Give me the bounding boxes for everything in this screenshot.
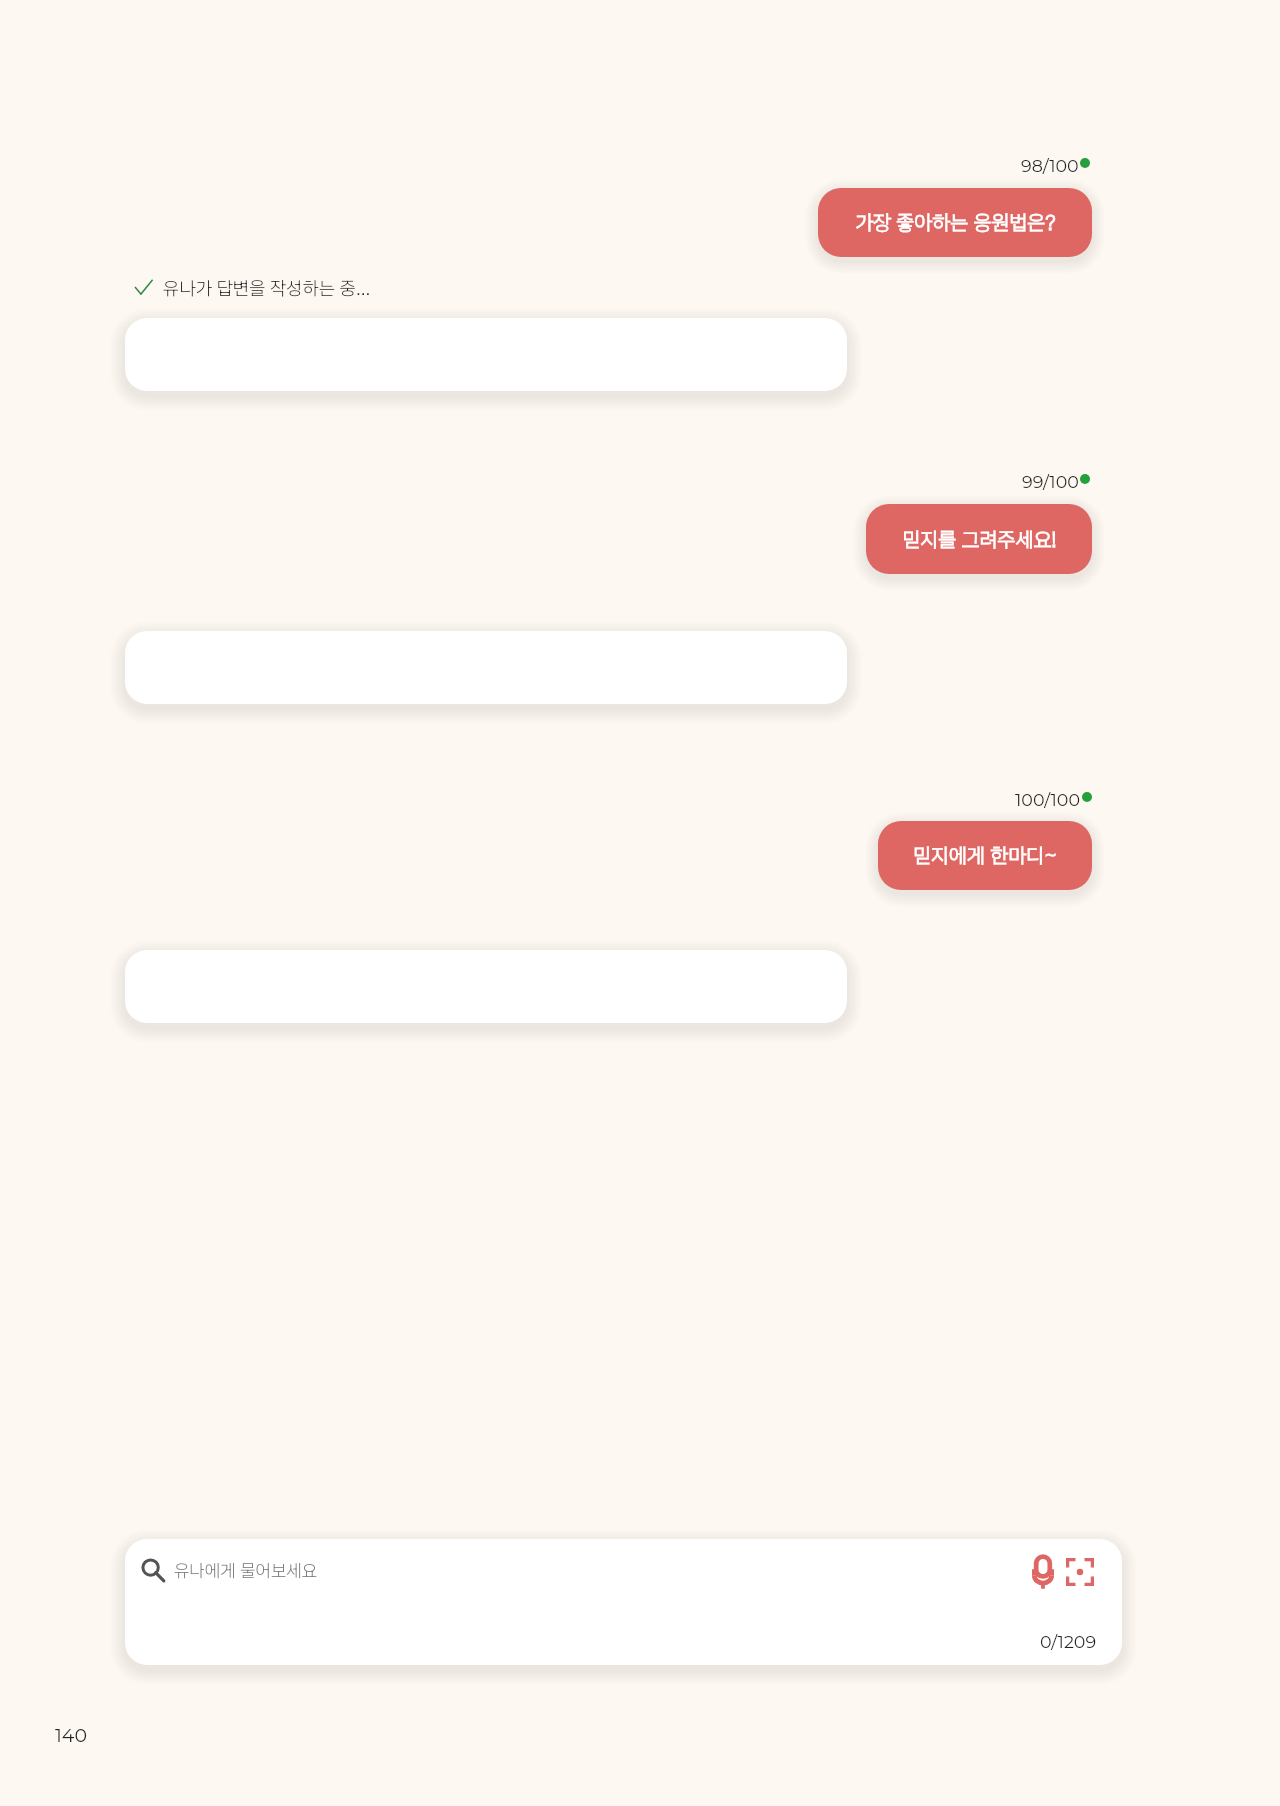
button[interactable]: 유나에게 물어보세요: [125, 1539, 1015, 1601]
staticText: 유나에게 물어보세요: [174, 1560, 318, 1581]
staticText: 98/100: [1021, 155, 1079, 176]
staticText: 유나가 답변을 작성하는 중...: [163, 277, 371, 300]
staticText: 믿지에게 한마디~: [913, 843, 1057, 868]
button[interactable]: Lens scan: [1062, 1551, 1097, 1593]
staticText: 믿지를 그려주세요!: [902, 527, 1057, 552]
button[interactable]: 믿지에게 한마디~: [878, 821, 1092, 890]
button[interactable]: Voice input: [1026, 1551, 1059, 1593]
staticText: 140: [55, 1724, 87, 1747]
staticText: 100/100: [1015, 789, 1081, 810]
staticText: 99/100: [1022, 471, 1079, 492]
staticText: 0/1209: [1040, 1631, 1097, 1652]
button[interactable]: 가장 좋아하는 응원법은?: [818, 188, 1092, 257]
button[interactable]: 믿지를 그려주세요!: [866, 504, 1092, 574]
staticText: 가장 좋아하는 응원법은?: [855, 210, 1056, 235]
